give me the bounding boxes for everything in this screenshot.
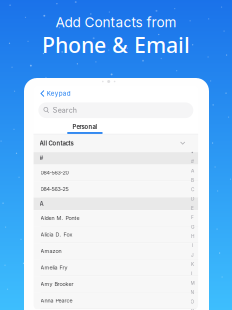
button[interactable]: 084-563-25 — [34, 181, 198, 198]
staticText: Alden M. Ponte — [41, 215, 80, 221]
staticText: I — [192, 243, 193, 248]
staticText: 084-563-20 — [41, 169, 69, 176]
staticText: O — [191, 299, 195, 305]
staticText: Amy Brooker — [41, 281, 74, 287]
staticText: Keypad — [47, 90, 71, 97]
button[interactable]: All Contacts — [34, 134, 198, 152]
staticText: N — [191, 290, 195, 295]
staticText: Anna Pearce — [41, 297, 73, 304]
staticText: Search — [53, 106, 77, 114]
staticText: J — [191, 252, 194, 258]
staticText: L — [191, 271, 194, 276]
staticText: Amelia Fry — [41, 264, 68, 271]
staticText: Add Contacts from — [55, 14, 176, 30]
staticText: D — [191, 196, 194, 202]
staticText: K — [191, 262, 194, 267]
staticText: H — [191, 233, 194, 239]
staticText: Amazon — [41, 248, 62, 254]
staticText: G — [191, 224, 194, 230]
button[interactable]: Alphabet index — [189, 147, 197, 310]
staticText: M — [191, 280, 195, 286]
button[interactable]: Amazon — [34, 243, 198, 260]
staticText: B — [191, 177, 194, 183]
button[interactable]: 084-563-20 — [34, 165, 198, 181]
staticText: Phone & Email — [42, 30, 190, 59]
staticText: E — [191, 205, 194, 211]
staticText: P — [191, 308, 194, 310]
staticText: A — [191, 168, 194, 174]
staticText: # — [191, 159, 194, 164]
button[interactable]: Anna Pearce — [34, 293, 198, 309]
staticText: # — [40, 155, 44, 162]
button[interactable]: Personal — [67, 123, 102, 134]
button[interactable]: Amelia Fry — [34, 260, 198, 276]
staticText: Personal — [72, 123, 97, 130]
button[interactable]: Alicia D. Fox — [34, 227, 198, 243]
staticText: 084-563-25 — [41, 186, 69, 192]
button[interactable]: Keypad — [34, 88, 71, 99]
staticText: • — [191, 149, 194, 155]
staticText: F — [191, 215, 194, 220]
button[interactable]: Amy Brooker — [34, 276, 198, 293]
staticText: C — [191, 187, 194, 192]
button[interactable]: Alden M. Ponte — [34, 210, 198, 227]
staticText: Alicia D. Fox — [41, 231, 73, 238]
staticText: A — [40, 200, 44, 207]
staticText: All Contacts — [40, 140, 74, 147]
